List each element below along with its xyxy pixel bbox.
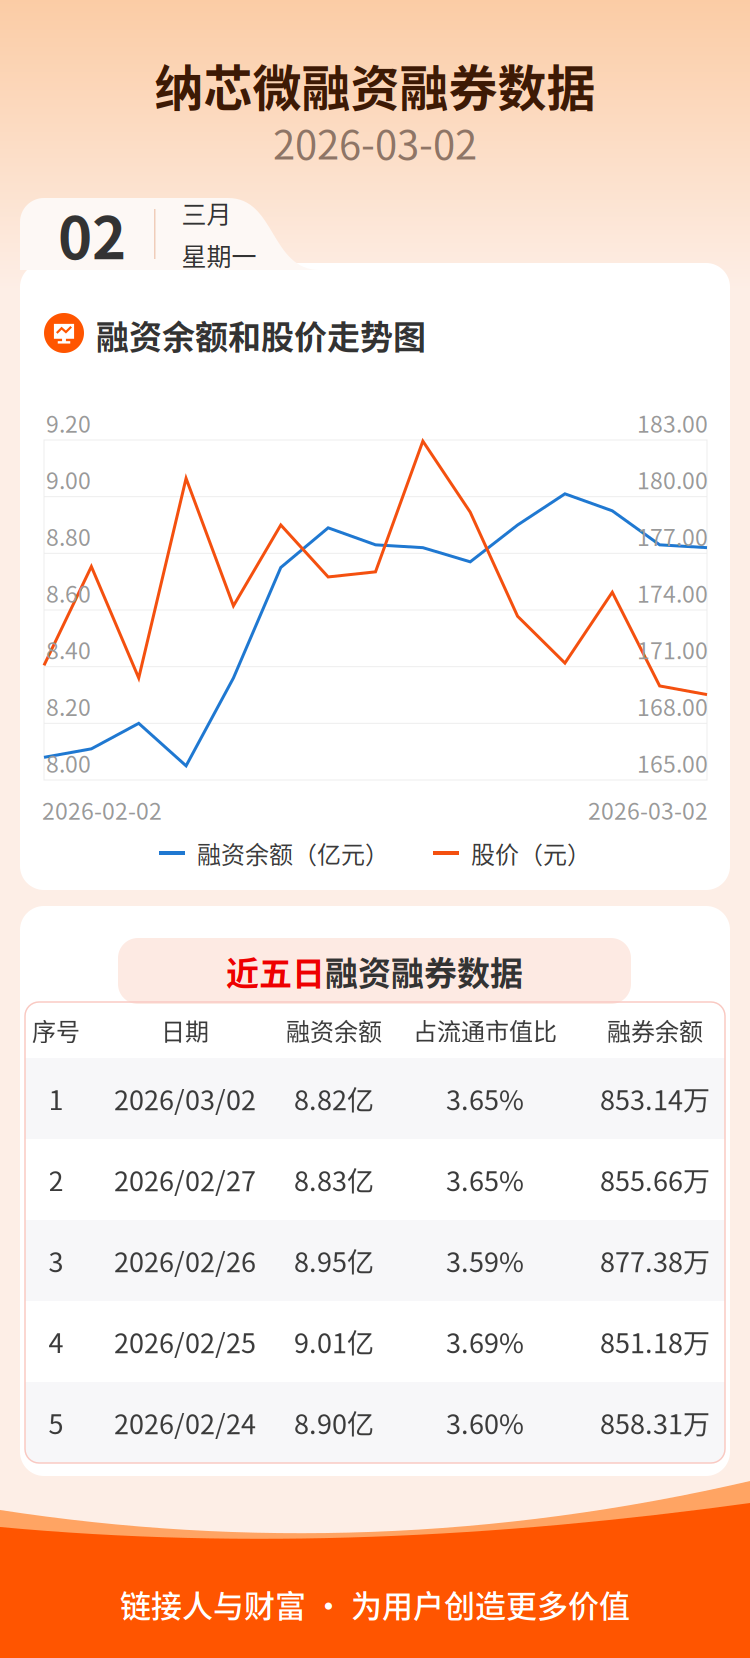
- staticText: 165.00: [637, 746, 708, 779]
- staticText: 858.31万: [600, 1403, 710, 1442]
- staticText: 融资余额和股价走势图: [96, 311, 426, 359]
- staticText: 3.65%: [446, 1160, 524, 1199]
- staticText: 9.01亿: [294, 1322, 374, 1361]
- staticText: 近五日: [226, 947, 325, 995]
- staticText: 链接人与财富 · 为用户创造更多价值: [120, 1582, 630, 1626]
- staticText: 02: [58, 192, 126, 276]
- staticText: 融资余额（亿元）: [197, 836, 389, 870]
- staticText: 2026/02/25: [114, 1322, 256, 1361]
- staticText: 177.00: [637, 519, 708, 553]
- staticText: 8.40: [46, 633, 91, 666]
- staticText: 8.00: [46, 746, 91, 779]
- staticText: 2026/02/24: [114, 1403, 256, 1442]
- staticText: 2026/03/02: [114, 1079, 256, 1118]
- staticText: 4: [48, 1322, 63, 1361]
- staticText: 3.65%: [446, 1079, 524, 1118]
- staticText: 8.95亿: [294, 1241, 374, 1280]
- staticText: 8.60: [46, 576, 91, 609]
- staticText: 877.38万: [600, 1241, 710, 1280]
- staticText: 1: [48, 1079, 63, 1118]
- staticText: 2026-03-02: [588, 793, 708, 826]
- staticText: 180.00: [637, 463, 708, 496]
- staticText: 8.82亿: [294, 1079, 374, 1118]
- staticText: 2: [48, 1160, 63, 1199]
- staticText: 星期一: [181, 237, 256, 273]
- staticText: 2026-03-02: [273, 113, 477, 171]
- staticText: 3: [48, 1241, 63, 1280]
- staticText: 3.59%: [446, 1241, 524, 1280]
- staticText: 融资融券数据: [325, 947, 523, 995]
- staticText: 2026/02/26: [114, 1241, 256, 1280]
- staticText: 纳芯微融资融券数据: [154, 49, 595, 120]
- staticText: 3.69%: [446, 1322, 524, 1361]
- staticText: 183.00: [637, 406, 708, 439]
- staticText: 3.60%: [446, 1403, 524, 1442]
- staticText: 三月: [181, 195, 231, 231]
- staticText: 8.90亿: [294, 1403, 374, 1442]
- staticText: 8.83亿: [294, 1160, 374, 1199]
- staticText: 融券余额: [607, 1013, 703, 1047]
- staticText: 855.66万: [600, 1160, 710, 1199]
- staticText: 168.00: [637, 689, 708, 723]
- staticText: 171.00: [637, 633, 708, 666]
- staticText: 2026-02-02: [42, 793, 162, 826]
- staticText: 8.80: [46, 519, 91, 553]
- staticText: 174.00: [637, 576, 708, 609]
- staticText: 9.00: [46, 463, 91, 496]
- staticText: 851.18万: [600, 1322, 710, 1361]
- staticText: 日期: [161, 1013, 209, 1047]
- staticText: 占流通市值比: [413, 1013, 557, 1047]
- staticText: 5: [48, 1403, 63, 1442]
- staticText: 融资余额: [286, 1013, 382, 1047]
- staticText: 9.20: [46, 406, 91, 439]
- staticText: 8.20: [46, 689, 91, 723]
- staticText: 2026/02/27: [114, 1160, 256, 1199]
- staticText: 股价（元）: [471, 836, 591, 870]
- staticText: 853.14万: [600, 1079, 710, 1118]
- staticText: 序号: [32, 1013, 80, 1047]
